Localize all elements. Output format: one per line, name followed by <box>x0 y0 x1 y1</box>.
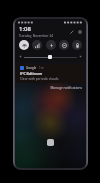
button[interactable]: Settings <box>76 28 83 35</box>
button[interactable]: Brightness <box>19 53 82 60</box>
staticText: 1:08 <box>19 25 31 33</box>
button[interactable]: Google <box>17 64 84 83</box>
staticText: 1m <box>39 66 44 70</box>
staticText: Clear with periodic clouds <box>20 77 59 81</box>
button[interactable]: Edit quick settings <box>68 28 75 35</box>
button[interactable]: Apps <box>47 139 54 146</box>
staticText: Tuesday, November 24 <box>19 34 54 38</box>
staticText: Manage notifications <box>50 86 82 90</box>
button[interactable]: Do not disturb <box>59 40 69 50</box>
button[interactable]: Mobile data <box>32 40 42 50</box>
staticText: 8°C Baltimore <box>20 71 43 76</box>
button[interactable]: Manage notifications <box>49 85 83 91</box>
button[interactable]: Flashlight <box>46 40 56 50</box>
button[interactable]: Battery saver <box>72 40 82 50</box>
staticText: Google <box>26 66 37 70</box>
button[interactable]: Wi-Fi <box>19 40 29 50</box>
